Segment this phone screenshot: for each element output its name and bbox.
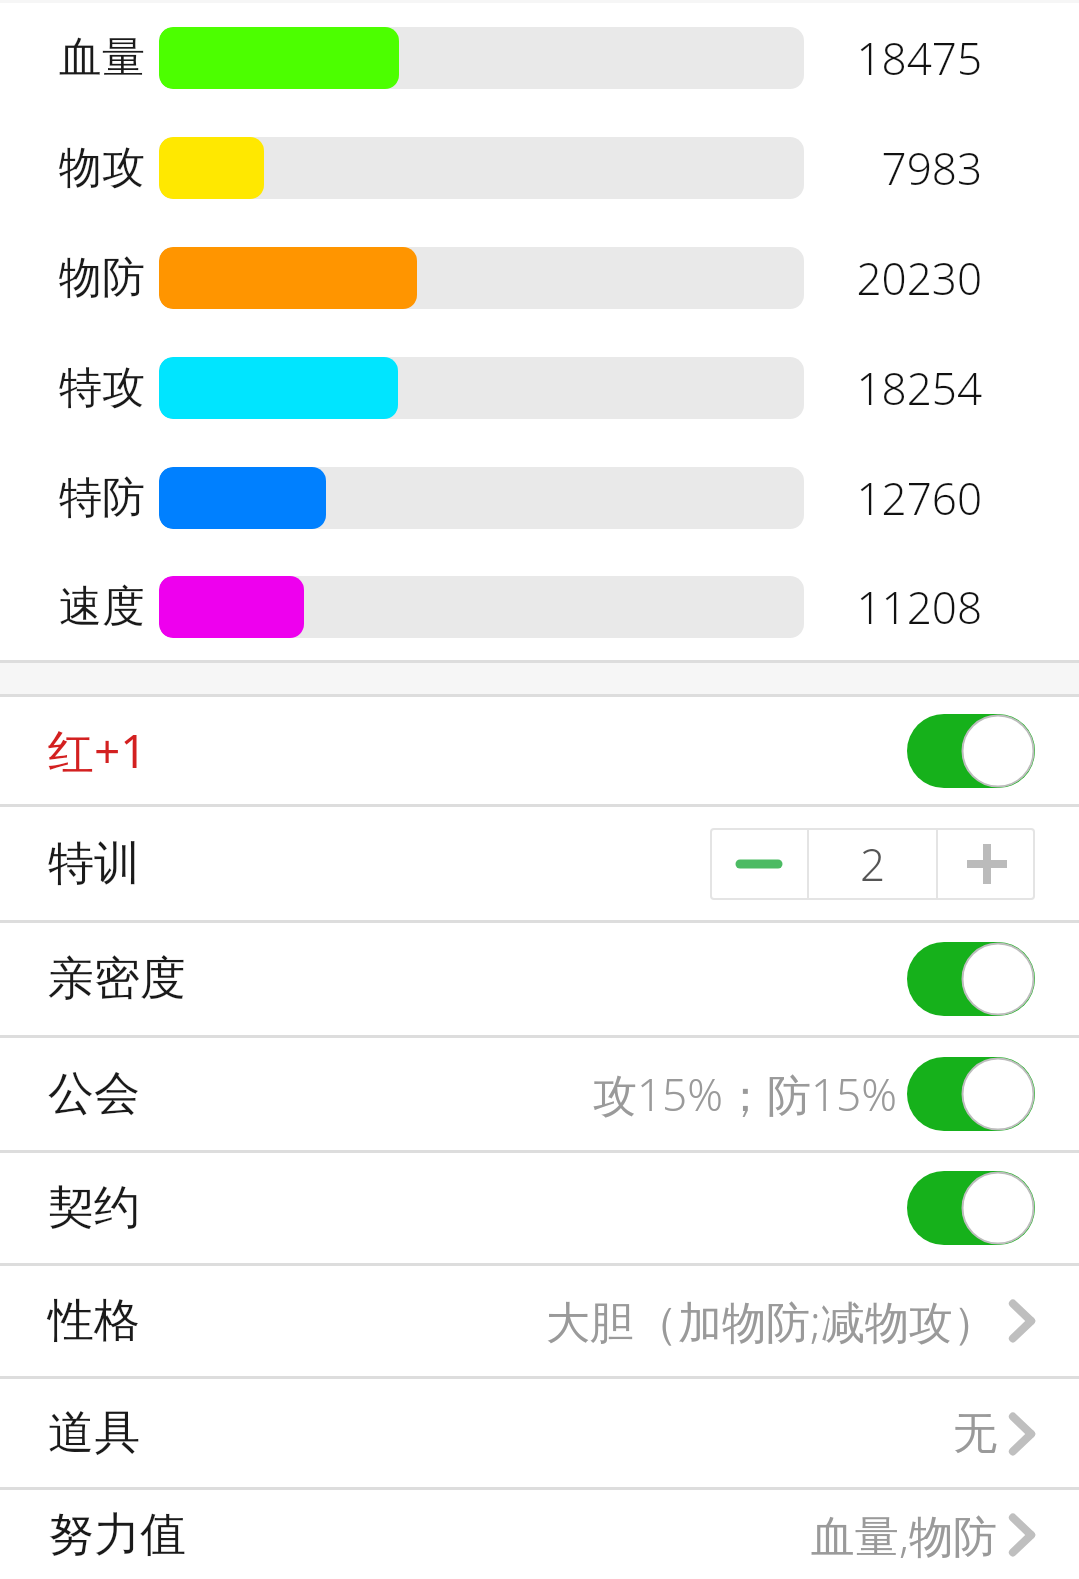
button[interactable]: 契约 bbox=[0, 1153, 1079, 1263]
staticText: 攻15%；防15% bbox=[593, 1064, 897, 1124]
staticText: 速度 bbox=[59, 580, 145, 634]
button[interactable]: 道具 bbox=[0, 1379, 1079, 1487]
staticText: 物攻 bbox=[59, 141, 145, 195]
button[interactable]: 物防 bbox=[0, 223, 1079, 333]
button[interactable]: Decrease bbox=[710, 828, 807, 900]
staticText: 7983 bbox=[881, 138, 982, 198]
staticText: 血量,物防 bbox=[811, 1505, 997, 1565]
button[interactable]: 亲密度 bbox=[0, 923, 1079, 1035]
staticText: 契约 bbox=[48, 1179, 140, 1237]
staticText: 特训 bbox=[48, 835, 140, 893]
other: Open bbox=[1009, 1298, 1035, 1344]
staticText: 特防 bbox=[59, 471, 145, 525]
button[interactable]: 血量 bbox=[0, 3, 1079, 113]
staticText: 物防 bbox=[59, 251, 145, 305]
staticText: 大胆（加物防;减物攻） bbox=[546, 1291, 997, 1351]
button[interactable]: 特攻 bbox=[0, 333, 1079, 443]
other: Open bbox=[1009, 1411, 1035, 1457]
staticText: 18254 bbox=[856, 358, 982, 418]
staticText: 道具 bbox=[48, 1404, 140, 1462]
button[interactable]: 性格 bbox=[0, 1266, 1079, 1376]
button[interactable]: Toggle bbox=[907, 714, 1035, 788]
staticText: 2 bbox=[860, 834, 886, 894]
staticText: 公会 bbox=[48, 1065, 140, 1123]
staticText: 亲密度 bbox=[48, 950, 186, 1008]
button[interactable]: 物攻 bbox=[0, 113, 1079, 223]
staticText: 无 bbox=[953, 1406, 997, 1461]
staticText: 20230 bbox=[856, 248, 982, 308]
staticText: 红+1 bbox=[48, 719, 147, 782]
staticText: 特攻 bbox=[59, 361, 145, 415]
other: Open bbox=[1009, 1512, 1035, 1558]
staticText: 性格 bbox=[48, 1292, 140, 1350]
staticText: 18475 bbox=[856, 28, 982, 88]
staticText: 11208 bbox=[856, 577, 982, 637]
button[interactable]: Toggle bbox=[907, 1171, 1035, 1245]
button[interactable]: 特防 bbox=[0, 443, 1079, 553]
button[interactable]: 努力值 bbox=[0, 1490, 1079, 1579]
staticText: 努力值 bbox=[48, 1506, 186, 1564]
staticText: 血量 bbox=[59, 31, 145, 85]
staticText: 12760 bbox=[856, 468, 982, 528]
button[interactable]: 特训 bbox=[0, 807, 1079, 920]
button[interactable]: Increase bbox=[938, 828, 1035, 900]
button[interactable]: 公会 bbox=[0, 1038, 1079, 1150]
button[interactable]: 红+1 bbox=[0, 697, 1079, 804]
button[interactable]: 速度 bbox=[0, 553, 1079, 660]
button[interactable]: Toggle bbox=[907, 1057, 1035, 1131]
button[interactable]: Toggle bbox=[907, 942, 1035, 1016]
